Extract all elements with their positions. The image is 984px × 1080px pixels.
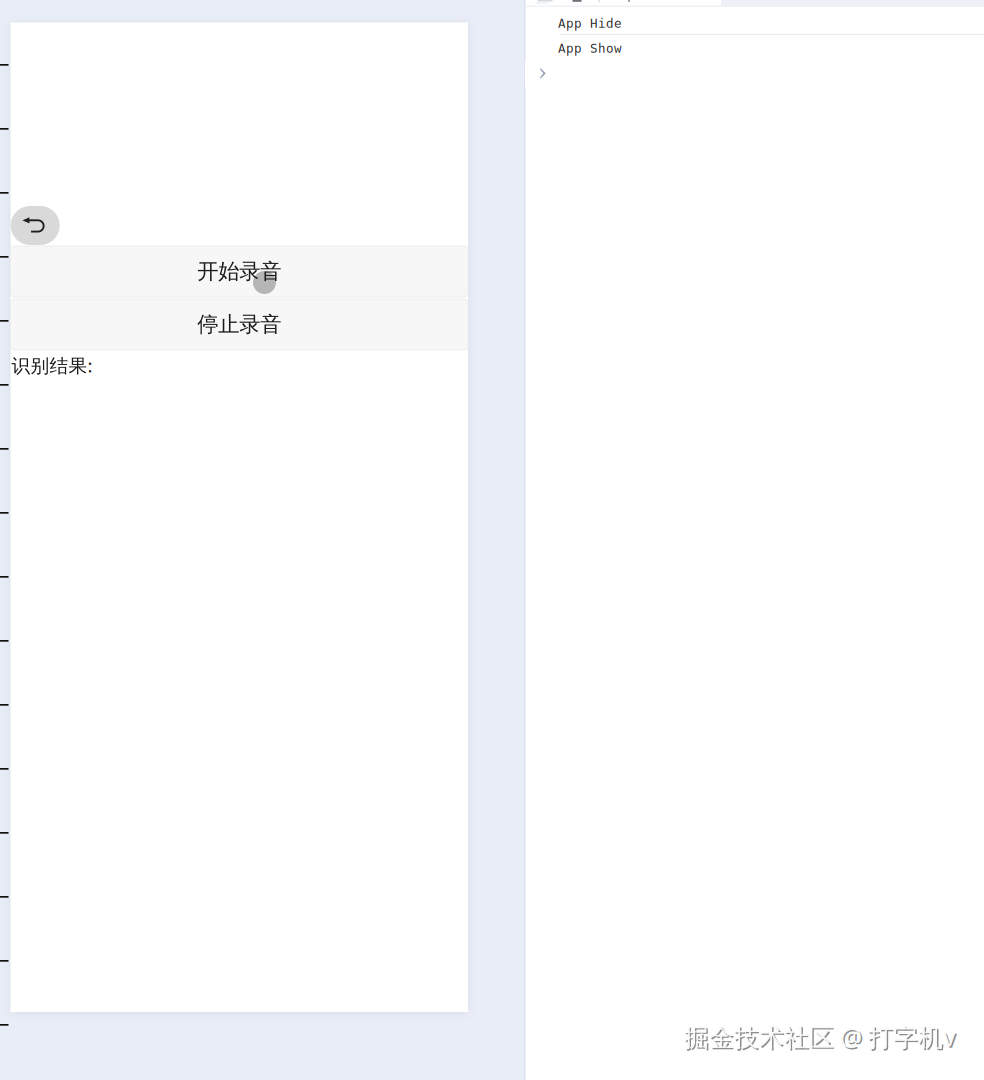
staticText: 掘金技术社区 @ 打字机v xyxy=(685,1021,957,1055)
button[interactable]: Back xyxy=(11,206,60,245)
staticText: App Hide xyxy=(558,16,622,31)
staticText: 停止录音 xyxy=(197,311,281,338)
button[interactable]: 开始录音 xyxy=(10,246,468,297)
staticText: 开始录音 xyxy=(197,258,281,285)
staticText: 识别结果: xyxy=(11,352,92,378)
staticText: App Show xyxy=(558,41,622,56)
button[interactable]: 停止录音 xyxy=(10,299,468,350)
button[interactable]: Console input xyxy=(525,61,984,87)
staticText: 掘金技术社区 @ 打字机v xyxy=(684,1020,956,1054)
